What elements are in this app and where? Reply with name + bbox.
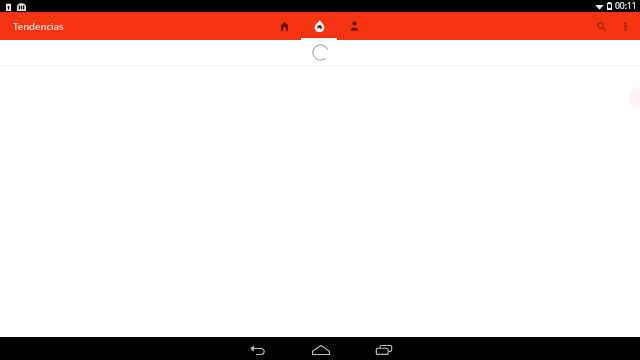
button[interactable]: Home (267, 12, 302, 40)
button[interactable]: Recents (352, 338, 415, 360)
button[interactable]: Trending (302, 12, 337, 40)
button[interactable]: Account (337, 12, 372, 40)
button[interactable]: More options (614, 12, 636, 40)
button[interactable]: Search (588, 12, 614, 40)
staticText: Tendencias (13, 20, 64, 33)
staticText: 00:11 (615, 0, 637, 12)
button[interactable]: Back (226, 338, 289, 360)
button[interactable]: Home (289, 338, 352, 360)
